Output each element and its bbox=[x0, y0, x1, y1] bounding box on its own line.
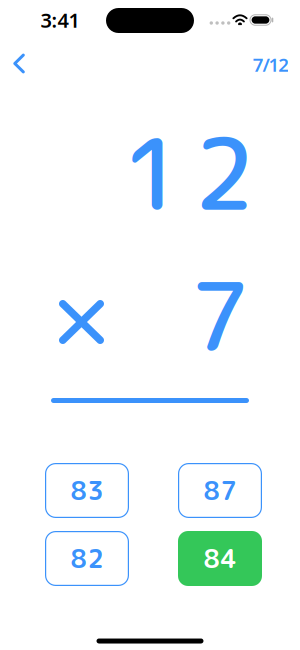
button[interactable]: 84 bbox=[178, 531, 262, 586]
button[interactable]: Back bbox=[0, 42, 44, 84]
button[interactable]: 87 bbox=[178, 463, 262, 518]
button[interactable]: 82 bbox=[45, 531, 129, 586]
staticText: 87 bbox=[203, 473, 236, 508]
staticText: 3:41 bbox=[40, 7, 79, 33]
staticText: 83 bbox=[70, 473, 103, 508]
button[interactable]: 83 bbox=[45, 463, 129, 518]
button[interactable]: 7/12 bbox=[243, 48, 299, 80]
staticText: 84 bbox=[203, 541, 236, 576]
staticText: 7 bbox=[190, 249, 250, 381]
staticText: 7/12 bbox=[253, 52, 289, 77]
staticText: 12 bbox=[121, 105, 254, 241]
staticText: 82 bbox=[70, 541, 103, 576]
